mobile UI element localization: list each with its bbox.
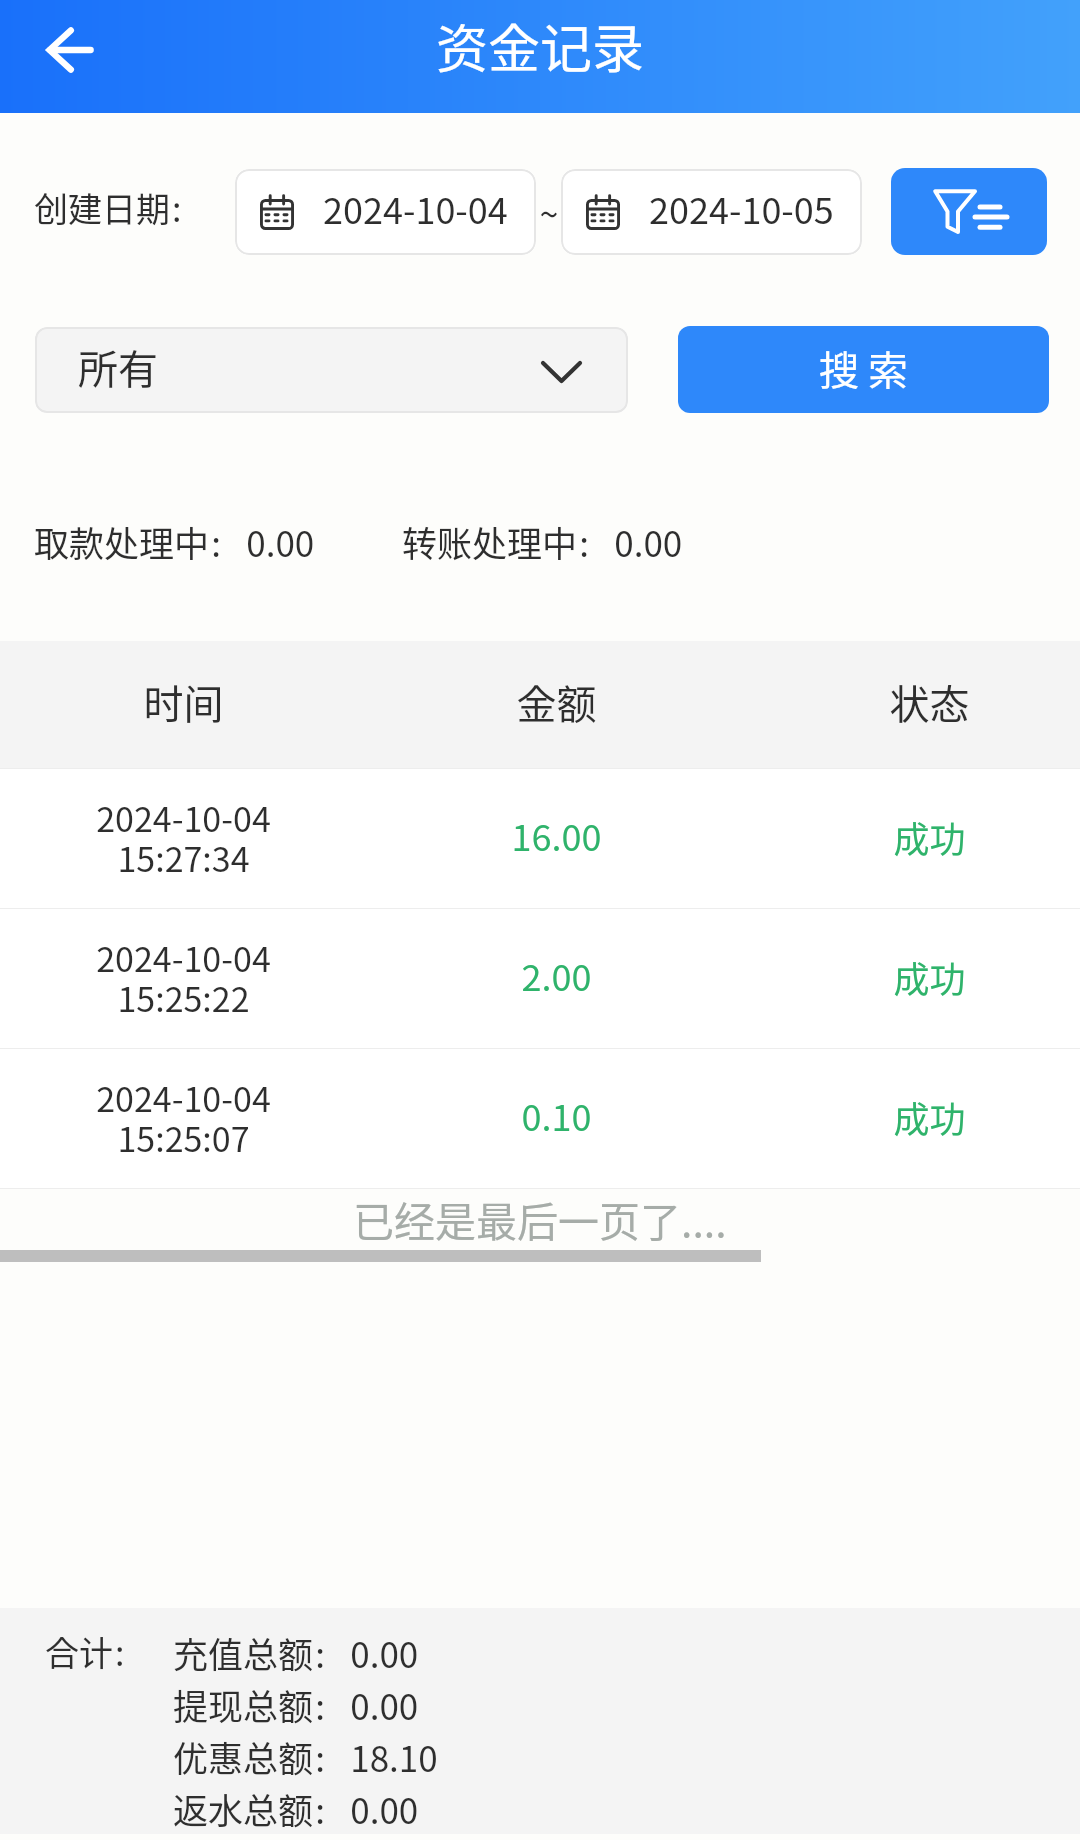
staticText: 16.00 xyxy=(370,809,743,861)
staticText: 创建日期 : xyxy=(34,183,207,232)
staticText: 2024-10-05 xyxy=(649,182,834,234)
button[interactable]: 2024-10-04 15:25:07 xyxy=(0,1049,1080,1188)
staticText: 状态 xyxy=(743,673,1080,731)
staticText: 时间 xyxy=(0,673,370,731)
staticText: 0.10 xyxy=(370,1089,743,1141)
button[interactable]: 2024-10-04 15:25:22 xyxy=(0,909,1080,1048)
staticText: 成功 xyxy=(743,951,1080,1003)
button[interactable]: 所有 xyxy=(35,327,628,413)
staticText: 金额 xyxy=(370,673,743,731)
staticText: 2024-10-04 15:25:07 xyxy=(0,1073,370,1162)
staticText: ~ xyxy=(538,188,560,237)
staticText: 所有 xyxy=(78,338,158,396)
staticText: 合计 : xyxy=(45,1627,150,1676)
staticText: 取款处理中 : 0.00 xyxy=(34,516,315,567)
staticText: 2024-10-04 15:27:34 xyxy=(0,793,370,882)
staticText: 成功 xyxy=(743,1091,1080,1143)
staticText: 转账处理中 : 0.00 xyxy=(402,516,683,567)
staticText: 搜 索 xyxy=(819,339,908,397)
staticText: 成功 xyxy=(743,811,1080,863)
button[interactable]: 2024-10-04 15:27:34 xyxy=(0,769,1080,908)
button[interactable]: 2024-10-05 xyxy=(561,169,862,255)
staticText: 资金记录 xyxy=(436,8,645,83)
staticText: 充值总额 : 0.00 提现总额 : 0.00 优惠总额 : 18.10 返水总… xyxy=(173,1627,438,1834)
staticText: 2.00 xyxy=(370,949,743,1001)
button[interactable]: 搜 索 xyxy=(678,326,1049,413)
staticText: 2024-10-04 xyxy=(323,182,508,234)
staticText: 已经是最后一页了.... xyxy=(353,1189,727,1248)
staticText: 2024-10-04 15:25:22 xyxy=(0,933,370,1022)
button[interactable]: Back xyxy=(20,2,120,98)
button[interactable]: Filter xyxy=(891,168,1047,255)
button[interactable]: 2024-10-04 xyxy=(235,169,536,255)
